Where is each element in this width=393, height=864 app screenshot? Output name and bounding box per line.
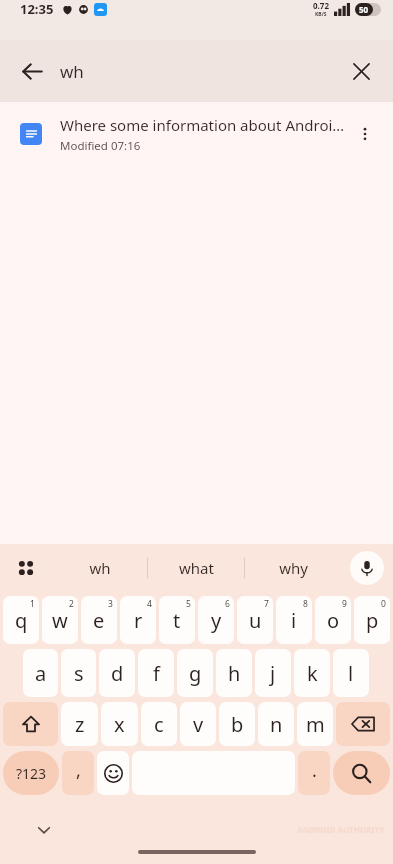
button[interactable]: More options: [345, 114, 385, 154]
button[interactable]: Toolbar: [0, 544, 52, 592]
staticText: p: [366, 607, 379, 634]
staticText: t: [173, 607, 181, 634]
staticText: KB/S: [315, 11, 327, 18]
button[interactable]: d: [99, 649, 135, 697]
button[interactable]: c: [141, 702, 177, 746]
button[interactable]: u: [237, 596, 273, 644]
button[interactable]: Back: [10, 49, 54, 93]
button[interactable]: v: [180, 702, 216, 746]
staticText: z: [75, 711, 85, 738]
staticText: 8: [303, 598, 308, 610]
button[interactable]: why: [245, 544, 341, 592]
staticText: ANDROID AUTHORITY: [297, 824, 385, 835]
staticText: 2: [69, 598, 74, 610]
staticText: 0.72: [313, 0, 329, 11]
staticText: why: [279, 558, 308, 578]
button[interactable]: wh: [60, 40, 339, 102]
staticText: f: [153, 660, 160, 687]
staticText: wh: [60, 60, 84, 83]
staticText: i: [291, 607, 297, 634]
button[interactable]: p: [354, 596, 390, 644]
staticText: what: [179, 558, 214, 578]
staticText: 1: [30, 598, 35, 610]
button[interactable]: a: [23, 649, 58, 697]
button[interactable]: l: [333, 649, 369, 697]
staticText: 7: [264, 598, 269, 610]
staticText: v: [193, 711, 204, 738]
staticText: ,: [76, 758, 81, 783]
staticText: u: [249, 607, 262, 634]
staticText: 12:35: [20, 0, 54, 18]
button[interactable]: ?123: [3, 751, 59, 795]
staticText: g: [189, 660, 202, 687]
button[interactable]: n: [258, 702, 294, 746]
staticText: 4: [147, 598, 152, 610]
button[interactable]: Search: [333, 751, 390, 795]
button[interactable]: g: [177, 649, 213, 697]
button[interactable]: w: [42, 596, 78, 644]
staticText: 6: [225, 598, 230, 610]
button[interactable]: Backspace: [336, 702, 390, 746]
staticText: c: [154, 711, 164, 738]
staticText: n: [270, 711, 283, 738]
button[interactable]: Hide keyboard: [28, 814, 60, 846]
button[interactable]: o: [315, 596, 351, 644]
button[interactable]: y: [198, 596, 234, 644]
button[interactable]: k: [294, 649, 330, 697]
staticText: 0: [381, 598, 386, 610]
button[interactable]: z: [61, 702, 98, 746]
button[interactable]: x: [101, 702, 138, 746]
button[interactable]: Emoji: [97, 751, 129, 795]
staticText: j: [270, 660, 276, 687]
staticText: 3: [108, 598, 113, 610]
staticText: ?123: [16, 764, 47, 783]
staticText: 9: [342, 598, 347, 610]
button[interactable]: Voice input: [341, 544, 393, 592]
button[interactable]: b: [219, 702, 255, 746]
staticText: x: [114, 711, 125, 738]
button[interactable]: i: [276, 596, 312, 644]
staticText: q: [15, 607, 28, 634]
button[interactable]: h: [216, 649, 252, 697]
staticText: y: [211, 607, 222, 634]
staticText: h: [228, 660, 241, 687]
staticText: r: [134, 607, 143, 634]
button[interactable]: t: [159, 596, 195, 644]
button[interactable]: Clear search: [339, 49, 383, 93]
button[interactable]: s: [61, 649, 96, 697]
staticText: k: [307, 660, 318, 687]
button[interactable]: .: [298, 751, 330, 795]
staticText: e: [93, 607, 105, 634]
staticText: 50: [359, 4, 369, 15]
staticText: a: [35, 660, 47, 687]
staticText: l: [348, 660, 354, 687]
button[interactable]: f: [138, 649, 174, 697]
staticText: .: [312, 758, 317, 783]
button[interactable]: e: [81, 596, 117, 644]
staticText: o: [327, 607, 340, 634]
button[interactable]: j: [255, 649, 291, 697]
button[interactable]: Where some information about Android ...: [0, 102, 393, 166]
button[interactable]: what: [148, 544, 244, 592]
button[interactable]: r: [120, 596, 156, 644]
button[interactable]: Shift: [3, 702, 58, 746]
button[interactable]: ,: [62, 751, 94, 795]
staticText: s: [74, 660, 84, 687]
staticText: m: [306, 711, 325, 738]
staticText: Modified 07:16: [60, 138, 141, 154]
button[interactable]: m: [297, 702, 333, 746]
staticText: w: [52, 607, 68, 634]
staticText: 5: [186, 598, 191, 610]
staticText: Where some information about Android ...: [60, 115, 345, 135]
button[interactable]: wh: [52, 544, 147, 592]
staticText: d: [111, 660, 124, 687]
staticText: b: [231, 711, 244, 738]
staticText: wh: [89, 558, 111, 578]
button[interactable]: q: [3, 596, 39, 644]
